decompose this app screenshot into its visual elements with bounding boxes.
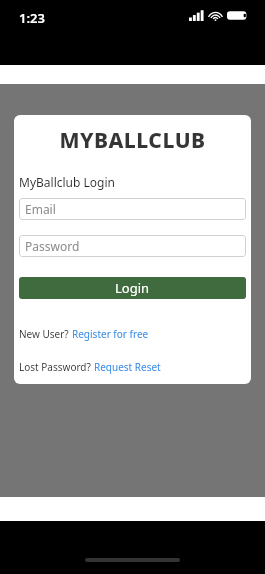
staticText: 1:23 <box>19 9 45 27</box>
button[interactable]: Register for free <box>72 327 149 341</box>
button[interactable]: Email <box>19 198 246 220</box>
staticText: Email <box>25 201 56 217</box>
staticText: Login <box>115 279 150 297</box>
button[interactable]: Login <box>19 277 246 299</box>
button[interactable]: Request Reset <box>94 360 161 374</box>
staticText: MyBallclub Login <box>19 174 115 190</box>
staticText: Request Reset <box>94 360 161 374</box>
staticText: New User? <box>19 327 69 341</box>
button[interactable]: Password <box>19 235 246 257</box>
staticText: MYBALLCLUB <box>19 126 246 155</box>
staticText: Lost Password? <box>19 360 91 374</box>
staticText: Register for free <box>72 327 149 341</box>
staticText: Password <box>25 238 80 254</box>
